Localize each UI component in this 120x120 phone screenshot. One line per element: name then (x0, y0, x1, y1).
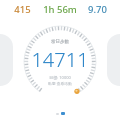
button[interactable]: Daily step progress (23, 25, 97, 99)
staticText: 當日步數 (51, 39, 69, 45)
staticText: 目標: 10000 (49, 75, 71, 80)
button[interactable]: 415 (6, 3, 39, 16)
staticText: 點擊 查看活動 (48, 81, 72, 86)
other: Daily step progress (23, 25, 97, 99)
staticText: 1h 56m (43, 3, 77, 16)
staticText: 9.70 (88, 3, 107, 16)
staticText: 14711 (31, 46, 89, 73)
button[interactable]: 9.70 (80, 3, 114, 16)
button[interactable]: 1h 56m (39, 3, 80, 16)
staticText: 415 (14, 3, 31, 16)
